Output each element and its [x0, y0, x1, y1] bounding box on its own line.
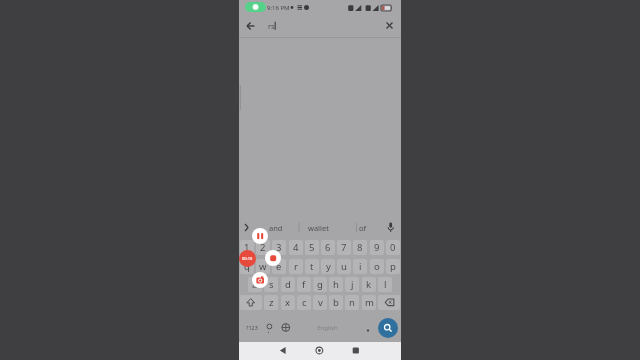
button[interactable] [252, 228, 268, 244]
staticText: v [318, 296, 323, 309]
staticText: u [341, 260, 347, 273]
button[interactable]: z [264, 295, 278, 310]
staticText: w [259, 260, 267, 273]
button[interactable]: l [378, 277, 392, 292]
staticText: 6 [325, 241, 331, 254]
staticText: e [276, 260, 282, 273]
staticText: y [326, 260, 331, 273]
button[interactable] [384, 220, 398, 235]
button[interactable]: wallet [308, 223, 329, 233]
button[interactable]: i [353, 259, 367, 274]
button[interactable]: m [362, 295, 376, 310]
button[interactable]: 7 [337, 240, 351, 255]
button[interactable]: b [329, 295, 343, 310]
staticText: s [269, 278, 274, 291]
button[interactable] [378, 295, 400, 310]
staticText: j [351, 278, 354, 291]
staticText: 4 [293, 241, 299, 254]
button[interactable]: h [329, 277, 343, 292]
button[interactable]: e [272, 259, 286, 274]
staticText: rs [268, 21, 275, 31]
button[interactable]: n [345, 295, 359, 310]
staticText: o [374, 260, 380, 273]
staticText: 5 [309, 241, 315, 254]
button[interactable] [242, 18, 258, 34]
staticText: a [252, 278, 258, 291]
button[interactable]: and [269, 223, 283, 233]
staticText: x [285, 296, 291, 309]
staticText: m [365, 296, 374, 309]
button[interactable]: ?123 [244, 324, 260, 331]
button[interactable] [263, 318, 276, 337]
button[interactable]: o [370, 259, 384, 274]
button[interactable]: f [297, 277, 311, 292]
staticText: k [366, 278, 372, 291]
button[interactable]: x [281, 295, 295, 310]
button[interactable]: 9 [370, 240, 384, 255]
button[interactable]: t [305, 259, 319, 274]
staticText: 2 [260, 241, 266, 254]
staticText: h [333, 278, 339, 291]
staticText: c [302, 296, 307, 309]
staticText: 9 [374, 241, 380, 254]
button[interactable]: 2 [256, 240, 270, 255]
staticText: 00:10 [242, 256, 253, 261]
button[interactable] [275, 343, 290, 358]
button[interactable] [381, 18, 397, 34]
button[interactable]: j [345, 277, 359, 292]
button[interactable]: k [362, 277, 376, 292]
button[interactable]: of [359, 223, 367, 233]
button[interactable]: 8 [353, 240, 367, 255]
button[interactable]: v [313, 295, 327, 310]
button[interactable]: s [264, 277, 278, 292]
button[interactable] [312, 343, 327, 358]
button[interactable] [265, 250, 281, 266]
staticText: 3 [276, 241, 282, 254]
staticText: n [349, 296, 355, 309]
staticText: g [317, 278, 323, 291]
staticText: 9:16 PM [267, 4, 290, 12]
button[interactable]: 6 [321, 240, 335, 255]
button[interactable]: 00:10 [239, 250, 256, 267]
button[interactable]: 4 [289, 240, 303, 255]
staticText: 1 [244, 241, 250, 254]
button[interactable]: y [321, 259, 335, 274]
button[interactable]: 3 [272, 240, 286, 255]
button[interactable]: 0 [386, 240, 400, 255]
button[interactable] [348, 343, 363, 358]
button[interactable] [240, 295, 262, 310]
staticText: 7 [341, 241, 347, 254]
staticText: b [333, 296, 339, 309]
button[interactable]: c [297, 295, 311, 310]
staticText: q [244, 260, 250, 273]
button[interactable] [361, 318, 374, 337]
button[interactable]: r [289, 259, 303, 274]
button[interactable] [252, 272, 268, 288]
staticText: t [310, 260, 314, 273]
staticText: p [390, 260, 396, 273]
staticText: 8 [357, 241, 363, 254]
staticText: r [294, 260, 298, 273]
button[interactable]: 5 [305, 240, 319, 255]
staticText: l [384, 278, 387, 291]
staticText: i [359, 260, 362, 273]
staticText: f [302, 278, 306, 291]
staticText: z [269, 296, 274, 309]
button[interactable]: u [337, 259, 351, 274]
button[interactable]: q [240, 259, 254, 274]
button[interactable] [378, 318, 398, 338]
staticText: 0 [390, 241, 396, 254]
button[interactable]: g [313, 277, 327, 292]
button[interactable] [279, 318, 293, 337]
button[interactable]: English [314, 324, 341, 332]
staticText: d [285, 278, 291, 291]
button[interactable]: w [256, 259, 270, 274]
button[interactable]: 1 [240, 240, 254, 255]
button[interactable]: d [281, 277, 295, 292]
button[interactable]: p [386, 259, 400, 274]
button[interactable]: a [248, 277, 262, 292]
